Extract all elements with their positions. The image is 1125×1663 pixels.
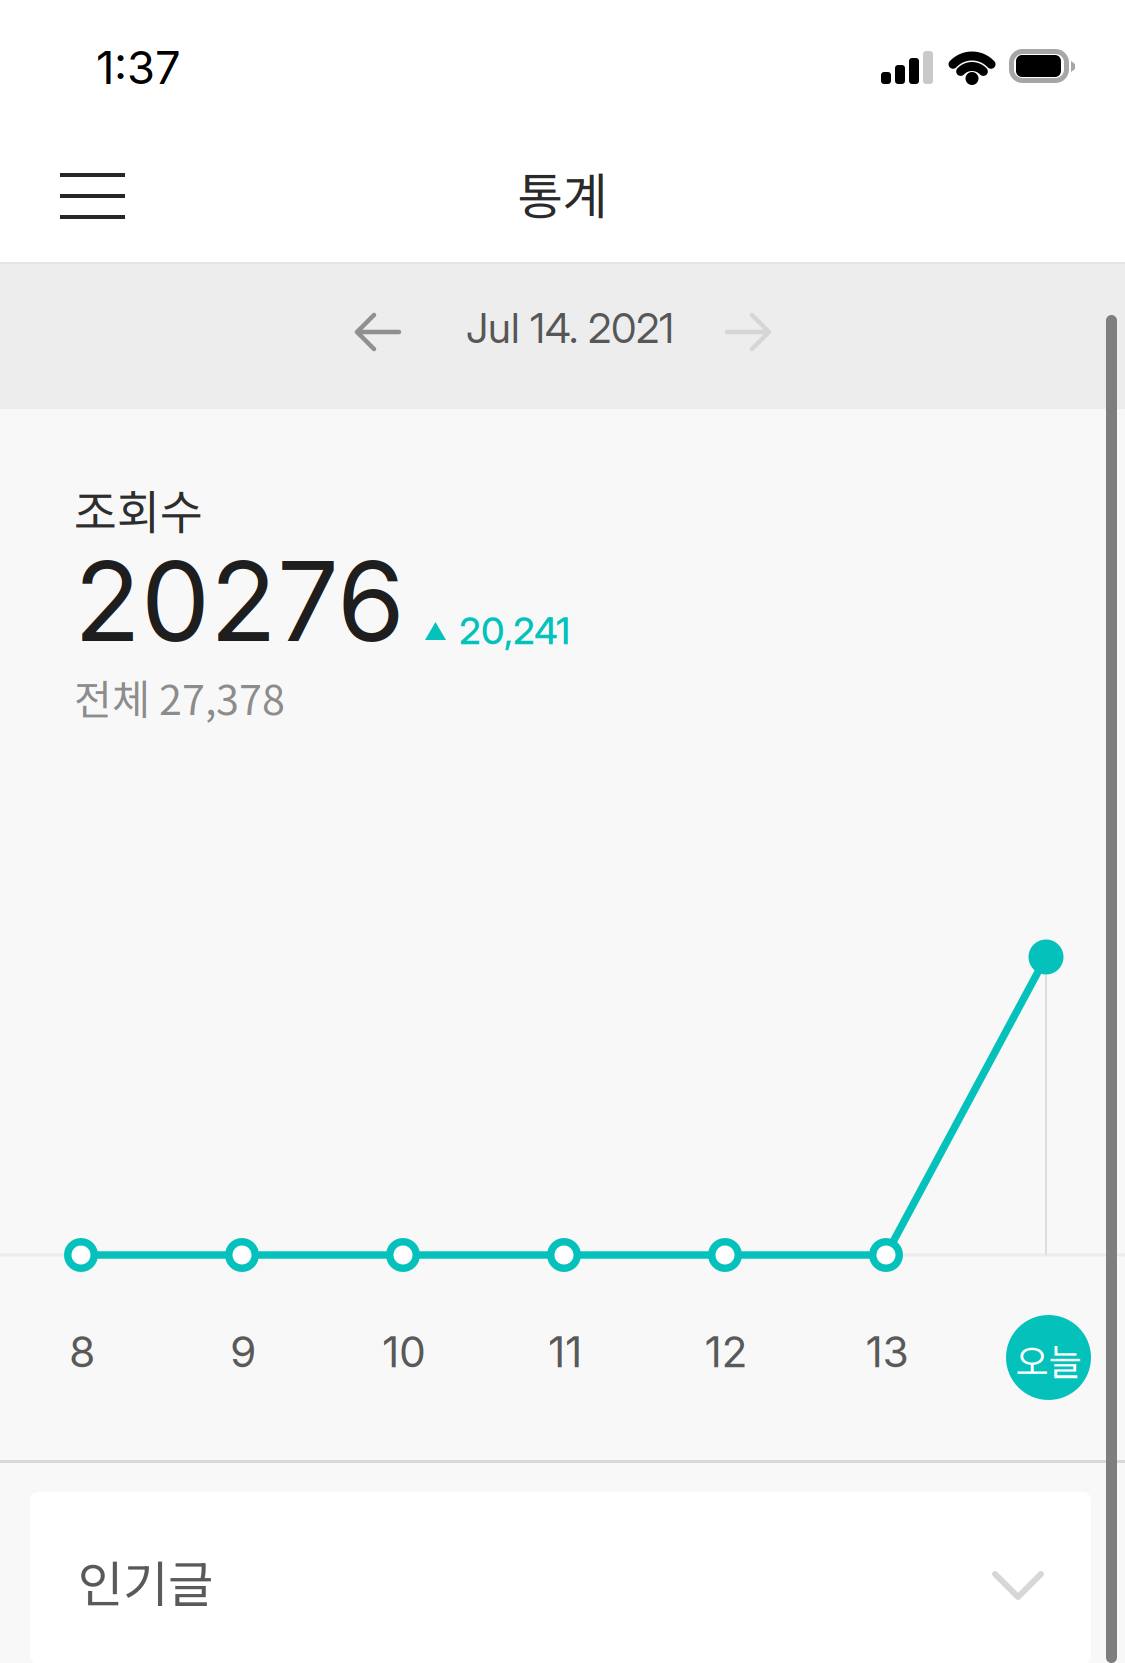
- button[interactable]: 인기글: [30, 1492, 1091, 1663]
- staticText: 전체 27,378: [74, 667, 285, 727]
- staticText: 9: [230, 1326, 256, 1378]
- button[interactable]: Menu: [31, 138, 154, 256]
- staticText: 10: [382, 1326, 426, 1378]
- staticText: 인기글: [78, 1545, 213, 1616]
- staticText: 오늘: [1015, 1333, 1081, 1385]
- button[interactable]: 오늘: [1006, 1317, 1091, 1402]
- staticText: 11: [548, 1326, 582, 1378]
- button[interactable]: Next day: [693, 277, 803, 387]
- staticText: 20276: [74, 535, 405, 667]
- staticText: 12: [704, 1326, 747, 1378]
- staticText: 8: [69, 1326, 95, 1378]
- staticText: 조회수: [74, 475, 203, 543]
- staticText: 20,241: [459, 608, 570, 653]
- staticText: 1:37: [96, 40, 181, 95]
- staticText: 통계: [517, 157, 607, 228]
- button[interactable]: Previous day: [323, 277, 433, 387]
- staticText: 13: [865, 1326, 908, 1378]
- staticText: Jul 14. 2021: [466, 303, 674, 353]
